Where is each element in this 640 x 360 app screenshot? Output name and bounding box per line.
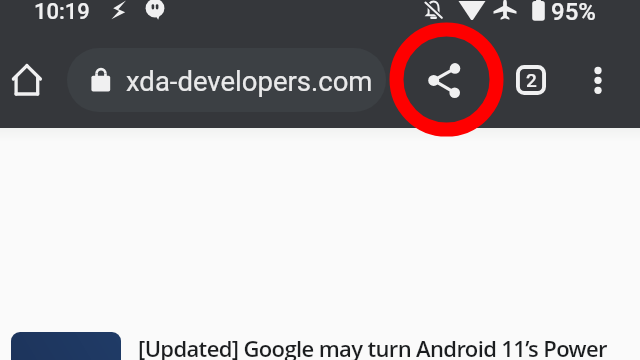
staticText: 95%: [551, 0, 596, 26]
staticText: 2: [526, 69, 537, 91]
staticText: [Updated] Google may turn Android 11’s P…: [138, 333, 607, 360]
staticText: 10:19: [34, 0, 90, 25]
button[interactable]: [11, 332, 121, 360]
button[interactable]: Home: [3, 56, 51, 104]
staticText: xda-developers.com: [126, 65, 373, 97]
button[interactable]: xda-developers.com: [67, 48, 386, 112]
button[interactable]: Share: [420, 56, 468, 104]
button[interactable]: Tabs: [507, 56, 555, 104]
button[interactable]: More options: [574, 56, 622, 104]
